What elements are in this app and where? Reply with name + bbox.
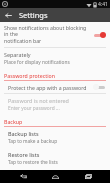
- button[interactable]: Back: [3, 10, 13, 20]
- staticText: 4:41: [98, 1, 108, 8]
- button[interactable]: Password is not entered: [0, 94, 110, 115]
- button[interactable]: Toggle off: [93, 83, 106, 91]
- staticText: Tap to restore the lists: [8, 159, 58, 166]
- staticText: Backup lists: [8, 130, 39, 137]
- button[interactable]: Show notifications about blocking in the…: [0, 22, 110, 47]
- button[interactable]: Separately: [0, 48, 110, 69]
- button[interactable]: Home: [45, 170, 65, 183]
- staticText: Enter your password ...: [8, 105, 60, 112]
- staticText: Password protection: [4, 72, 55, 79]
- button[interactable]: Backup lists: [0, 127, 110, 148]
- staticText: Password is not entered: [8, 97, 69, 104]
- staticText: Settings: [19, 10, 48, 20]
- staticText: Backup: [4, 118, 23, 125]
- staticText: Show notifications about blocking in the…: [4, 24, 91, 45]
- staticText: Tap to make a backup: [8, 138, 58, 145]
- button[interactable]: Protect the app with a password: [0, 81, 110, 93]
- staticText: Place for display notifications: [4, 59, 70, 66]
- button[interactable]: Toggle on: [93, 31, 106, 39]
- button[interactable]: Restore lists: [0, 148, 110, 169]
- button[interactable]: Recent apps: [78, 170, 98, 183]
- staticText: Protect the app with a password: [8, 84, 91, 91]
- staticText: Restore lists: [8, 151, 40, 158]
- staticText: Separately: [4, 51, 31, 58]
- button[interactable]: Back: [13, 170, 33, 183]
